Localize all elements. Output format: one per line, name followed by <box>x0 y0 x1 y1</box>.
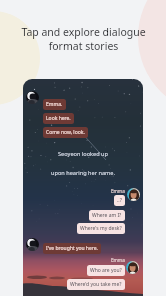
button[interactable]: Where's my desk? <box>77 223 125 234</box>
staticText: upon hearing her name. <box>51 169 115 177</box>
staticText: Emma <box>111 188 125 194</box>
button[interactable]: Character avatar <box>26 238 39 251</box>
staticText: Seoyeon looked up <box>58 150 108 158</box>
staticText: Emma <box>111 257 125 263</box>
staticText: Come now, look. <box>46 129 85 136</box>
staticText: Emma. <box>46 101 63 108</box>
button[interactable]: Character avatar <box>23 79 143 296</box>
button[interactable]: Look here. <box>43 113 74 124</box>
button[interactable]: Emma avatar <box>126 261 139 274</box>
staticText: Where'd you take me? <box>70 281 122 288</box>
staticText: Look here. <box>46 115 71 122</box>
button[interactable]: ..? <box>114 195 125 206</box>
button[interactable]: Character avatar <box>26 91 39 104</box>
button[interactable]: Where'd you take me? <box>67 279 125 290</box>
staticText: I've brought you here. <box>46 245 98 252</box>
button[interactable]: Emma. <box>43 99 66 110</box>
staticText: Tap and explore dialogue format stories <box>21 25 146 53</box>
staticText: ..? <box>117 197 122 204</box>
button[interactable]: Who are you? <box>87 265 125 276</box>
staticText: Who are you? <box>90 267 122 274</box>
button[interactable]: I've brought you here. <box>43 243 101 254</box>
staticText: Where am I? <box>92 212 122 219</box>
button[interactable]: Come now, look. <box>43 127 88 138</box>
button[interactable]: Where am I? <box>89 210 125 221</box>
button[interactable]: Emma avatar <box>127 188 140 201</box>
staticText: Where's my desk? <box>80 225 122 232</box>
